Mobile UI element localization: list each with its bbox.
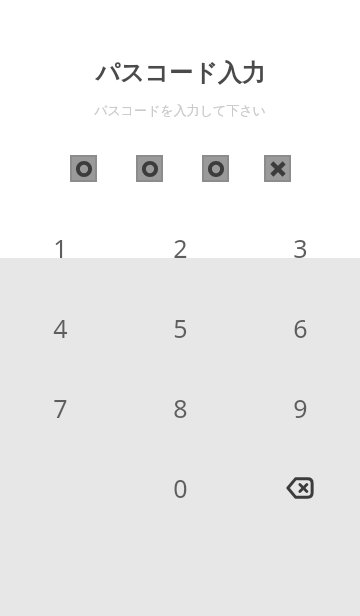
button[interactable]: Entered digit [70, 155, 97, 182]
button[interactable]: 7 [0, 368, 120, 448]
button[interactable]: 8 [120, 368, 240, 448]
staticText: 1 [53, 231, 68, 265]
button[interactable]: 5 [120, 288, 240, 368]
staticText: 6 [293, 311, 308, 345]
button[interactable]: Entered digit [202, 155, 229, 182]
button[interactable]: 6 [240, 288, 360, 368]
button[interactable]: 3 [240, 208, 360, 288]
staticText: 2 [173, 231, 188, 265]
staticText: 8 [173, 391, 188, 425]
button[interactable]: 1 [0, 208, 120, 288]
button[interactable]: 0 [120, 448, 240, 528]
button[interactable]: 9 [240, 368, 360, 448]
staticText: パスコード入力 [95, 58, 266, 88]
button[interactable]: Entered digit [136, 155, 163, 182]
staticText: 7 [53, 391, 68, 425]
staticText: 4 [53, 311, 68, 345]
button[interactable]: Backspace [240, 448, 360, 528]
staticText: 3 [293, 231, 308, 265]
staticText: 0 [173, 471, 188, 505]
button[interactable]: Clear [264, 155, 291, 182]
staticText: 9 [293, 391, 308, 425]
button[interactable]: 2 [120, 208, 240, 288]
button[interactable]: 4 [0, 288, 120, 368]
staticText: パスコードを入力して下さい [94, 102, 266, 118]
staticText: 5 [173, 311, 188, 345]
